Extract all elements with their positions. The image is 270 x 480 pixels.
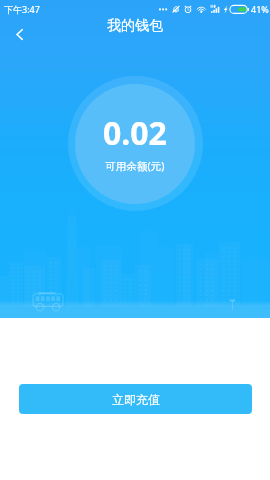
staticText: 0.02 — [103, 111, 167, 155]
button[interactable]: Back — [5, 20, 33, 48]
staticText: 立即充值 — [112, 392, 160, 407]
staticText: 41% — [251, 3, 269, 15]
staticText: 我的钱包 — [107, 17, 163, 35]
staticText: 下午3:47 — [4, 3, 40, 15]
button[interactable]: 立即充值 — [19, 384, 252, 414]
staticText: 可用余额(元) — [105, 159, 165, 173]
